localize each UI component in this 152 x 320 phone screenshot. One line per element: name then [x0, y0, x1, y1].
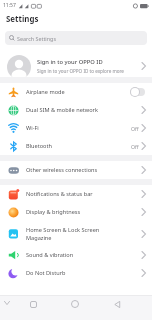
staticText: Airplane mode: [26, 88, 65, 96]
staticText: Search Settings: [17, 35, 56, 42]
button[interactable]: [1, 297, 13, 309]
staticText: 11:57: [3, 2, 16, 9]
button[interactable]: Other wireless connections: [0, 161, 152, 179]
staticText: Other wireless connections: [26, 166, 98, 174]
staticText: Sign in to your OPPO ID: [37, 58, 103, 66]
button[interactable]: Notifications & status bar: [0, 185, 152, 203]
staticText: Notifications & status bar: [26, 190, 93, 198]
staticText: Settings: [6, 14, 39, 25]
button[interactable]: [68, 297, 82, 311]
button[interactable]: Dual SIM & mobile network: [0, 101, 152, 119]
button[interactable]: Search Settings: [5, 31, 147, 45]
button[interactable]: Display & brightness: [0, 203, 152, 221]
staticText: Bluetooth: [26, 142, 52, 150]
staticText: Off: [131, 143, 139, 150]
staticText: Display & brightness: [26, 208, 81, 216]
staticText: Do Not Disturb: [26, 269, 66, 277]
button[interactable]: Wi-Fi: [0, 119, 152, 137]
button[interactable]: Sign in to your OPPO ID: [0, 47, 152, 77]
staticText: Dual SIM & mobile network: [26, 106, 98, 114]
button[interactable]: [26, 297, 40, 311]
staticText: Wi-Fi: [26, 124, 39, 132]
button[interactable]: Do Not Disturb: [0, 264, 152, 282]
button[interactable]: Airplane mode: [0, 83, 152, 101]
button[interactable]: [110, 297, 124, 311]
staticText: Off: [131, 125, 139, 132]
staticText: Home Screen & Lock Screen: [26, 226, 100, 234]
staticText: Sign in to your OPPO ID to explore more: [37, 68, 124, 74]
button[interactable]: Home Screen & Lock Screen: [0, 221, 152, 246]
staticText: Magazine: [26, 234, 52, 242]
staticText: Sound & vibration: [26, 251, 74, 259]
button[interactable]: Bluetooth: [0, 137, 152, 155]
button[interactable]: Sound & vibration: [0, 246, 152, 264]
